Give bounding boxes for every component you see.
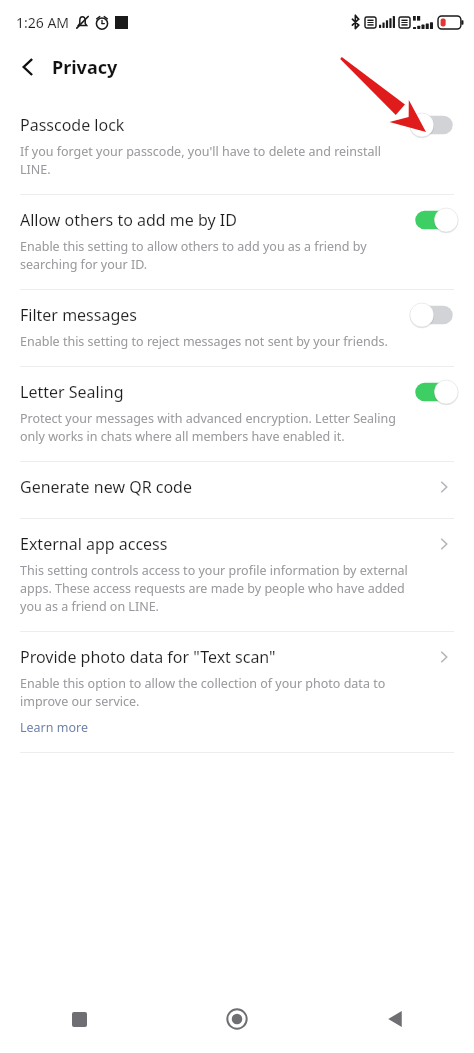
staticText: This setting controls access to your pro… — [20, 562, 418, 615]
staticText: Privacy — [52, 55, 118, 80]
staticText: Filter messages — [20, 304, 137, 326]
staticText: Enable this setting to reject messages n… — [20, 333, 388, 350]
button[interactable]: Home — [158, 985, 316, 1053]
button[interactable]: External app access — [0, 519, 474, 631]
button[interactable]: Generate new QR code — [0, 462, 474, 518]
button[interactable]: Letter Sealing — [0, 367, 474, 461]
button[interactable]: Passcode lock — [0, 100, 474, 194]
staticText: Allow others to add me by ID — [20, 209, 237, 231]
button[interactable]: Provide photo data for "Text scan" — [430, 644, 458, 670]
staticText: Learn more — [20, 719, 88, 736]
staticText: Letter Sealing — [20, 381, 124, 403]
button[interactable]: Back — [316, 985, 474, 1053]
button[interactable]: Provide photo data for "Text scan" — [0, 632, 474, 752]
button[interactable]: Back — [8, 47, 48, 87]
button[interactable]: Off — [410, 112, 458, 138]
button[interactable]: On — [410, 207, 458, 233]
button[interactable]: Off — [410, 302, 458, 328]
button[interactable]: Learn more — [20, 719, 88, 736]
button[interactable]: On — [410, 379, 458, 405]
staticText: Enable this option to allow the collecti… — [20, 675, 418, 710]
staticText: Enable this setting to allow others to a… — [20, 238, 398, 273]
button[interactable]: Recent apps — [0, 985, 158, 1053]
staticText: External app access — [20, 533, 168, 555]
button[interactable]: Generate new QR code — [430, 474, 458, 500]
staticText: If you forget your passcode, you'll have… — [20, 143, 398, 178]
staticText: Passcode lock — [20, 114, 125, 136]
button[interactable]: Allow others to add me by ID — [0, 195, 474, 289]
button[interactable]: External app access — [430, 531, 458, 557]
staticText: Generate new QR code — [20, 476, 192, 498]
staticText: Provide photo data for "Text scan" — [20, 646, 276, 668]
button[interactable]: Filter messages — [0, 290, 474, 366]
staticText: 1:26 AM — [16, 13, 70, 32]
staticText: Protect your messages with advanced encr… — [20, 410, 398, 445]
